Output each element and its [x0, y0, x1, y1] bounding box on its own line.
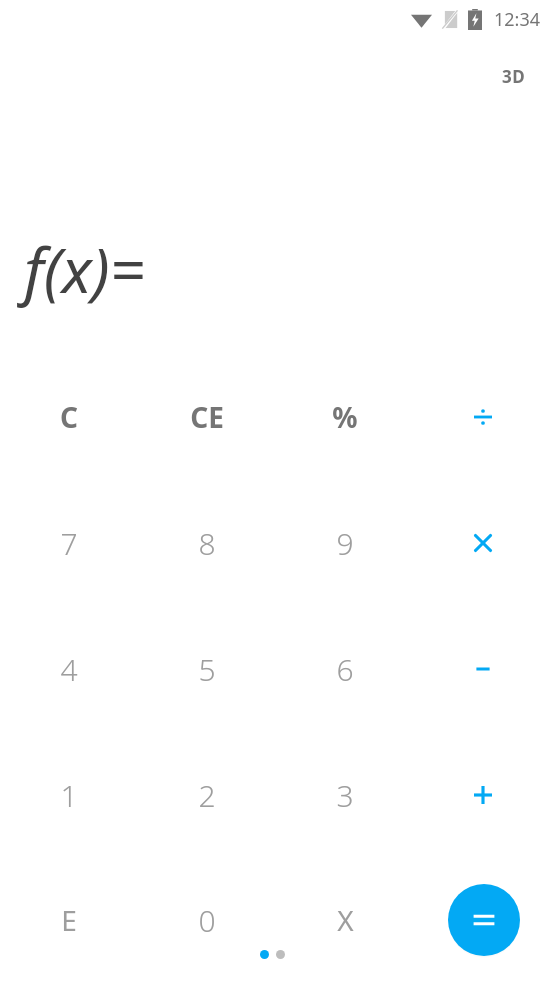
- button[interactable]: 5: [152, 614, 262, 724]
- button[interactable]: 7: [14, 488, 124, 598]
- staticText: 9: [336, 523, 354, 564]
- button[interactable]: CE: [152, 362, 262, 472]
- staticText: C: [60, 398, 78, 436]
- button[interactable]: Subtract: [428, 614, 538, 724]
- button[interactable]: Multiply: [428, 488, 538, 598]
- staticText: CE: [190, 398, 224, 436]
- button[interactable]: X: [290, 865, 400, 975]
- staticText: 7: [60, 523, 78, 564]
- button[interactable]: 2: [152, 740, 262, 850]
- staticText: 0: [198, 900, 216, 941]
- button[interactable]: 3D mode: [490, 58, 538, 94]
- button[interactable]: 1: [14, 740, 124, 850]
- staticText: 8: [198, 523, 216, 564]
- staticText: 1: [60, 775, 78, 816]
- button[interactable]: 6: [290, 614, 400, 724]
- button[interactable]: 3: [290, 740, 400, 850]
- button[interactable]: Add: [428, 740, 538, 850]
- staticText: 3D: [502, 65, 526, 88]
- button[interactable]: 9: [290, 488, 400, 598]
- staticText: E: [61, 901, 77, 939]
- staticText: 3: [336, 775, 354, 816]
- staticText: %: [332, 398, 358, 436]
- staticText: 2: [198, 775, 216, 816]
- staticText: X: [337, 901, 354, 939]
- button[interactable]: 4: [14, 614, 124, 724]
- button[interactable]: E: [14, 865, 124, 975]
- button[interactable]: %: [290, 362, 400, 472]
- button[interactable]: Divide: [428, 362, 538, 472]
- button[interactable]: 0: [152, 865, 262, 975]
- staticText: f(x)=: [24, 227, 146, 311]
- button[interactable]: C: [14, 362, 124, 472]
- button[interactable]: 8: [152, 488, 262, 598]
- button[interactable]: Equals: [448, 884, 520, 956]
- staticText: 6: [336, 649, 354, 690]
- staticText: 12:34: [494, 7, 541, 32]
- staticText: 4: [60, 649, 78, 690]
- staticText: 5: [198, 649, 216, 690]
